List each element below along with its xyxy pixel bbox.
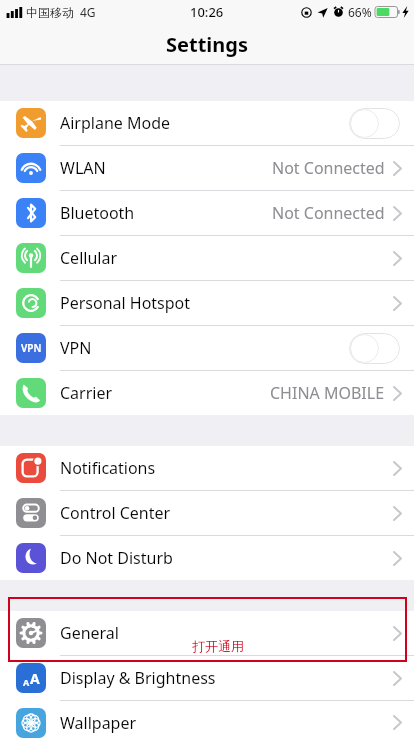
button[interactable]: Carrier [0,371,414,415]
button[interactable]: Bluetooth [0,191,414,235]
staticText: Cellular [60,247,117,269]
staticText: VPN [21,341,42,355]
staticText: Display & Brightness [60,667,216,689]
button[interactable]: Cellular [0,236,414,280]
staticText: A [30,669,40,688]
button[interactable]: A [0,656,414,700]
button[interactable]: Control Center [0,491,414,535]
staticText: Bluetooth [60,202,135,224]
staticText: A [23,676,30,688]
button[interactable]: Wallpaper [0,701,414,744]
staticText: Not Connected [272,157,385,179]
button[interactable]: Do Not Disturb [0,536,414,580]
button[interactable]: Airplane Mode [0,101,414,145]
staticText: Notifications [60,457,156,479]
staticText: 打开通用 [192,638,244,654]
staticText: Do Not Disturb [60,547,173,569]
staticText: CHINA MOBILE [270,382,385,404]
button[interactable]: Notifications [0,446,414,490]
staticText: Control Center [60,502,171,524]
staticText: General [60,622,119,644]
staticText: Carrier [60,382,113,404]
button[interactable]: Toggle Airplane Mode [349,108,400,139]
staticText: Wallpaper [60,712,137,734]
staticText: 中国移动 [26,5,74,20]
staticText: VPN [60,337,92,359]
staticText: 10:26 [190,3,224,21]
staticText: WLAN [60,157,106,179]
button[interactable]: Toggle VPN [349,333,400,364]
staticText: Personal Hotspot [60,292,191,314]
button[interactable]: VPN [0,326,414,370]
button[interactable]: General [0,611,414,655]
staticText: Airplane Mode [60,112,171,134]
staticText: Not Connected [272,202,385,224]
staticText: 4G [80,4,96,20]
button[interactable]: Personal Hotspot [0,281,414,325]
staticText: 66% [348,4,372,20]
button[interactable]: WLAN [0,146,414,190]
staticText: Settings [166,31,248,58]
